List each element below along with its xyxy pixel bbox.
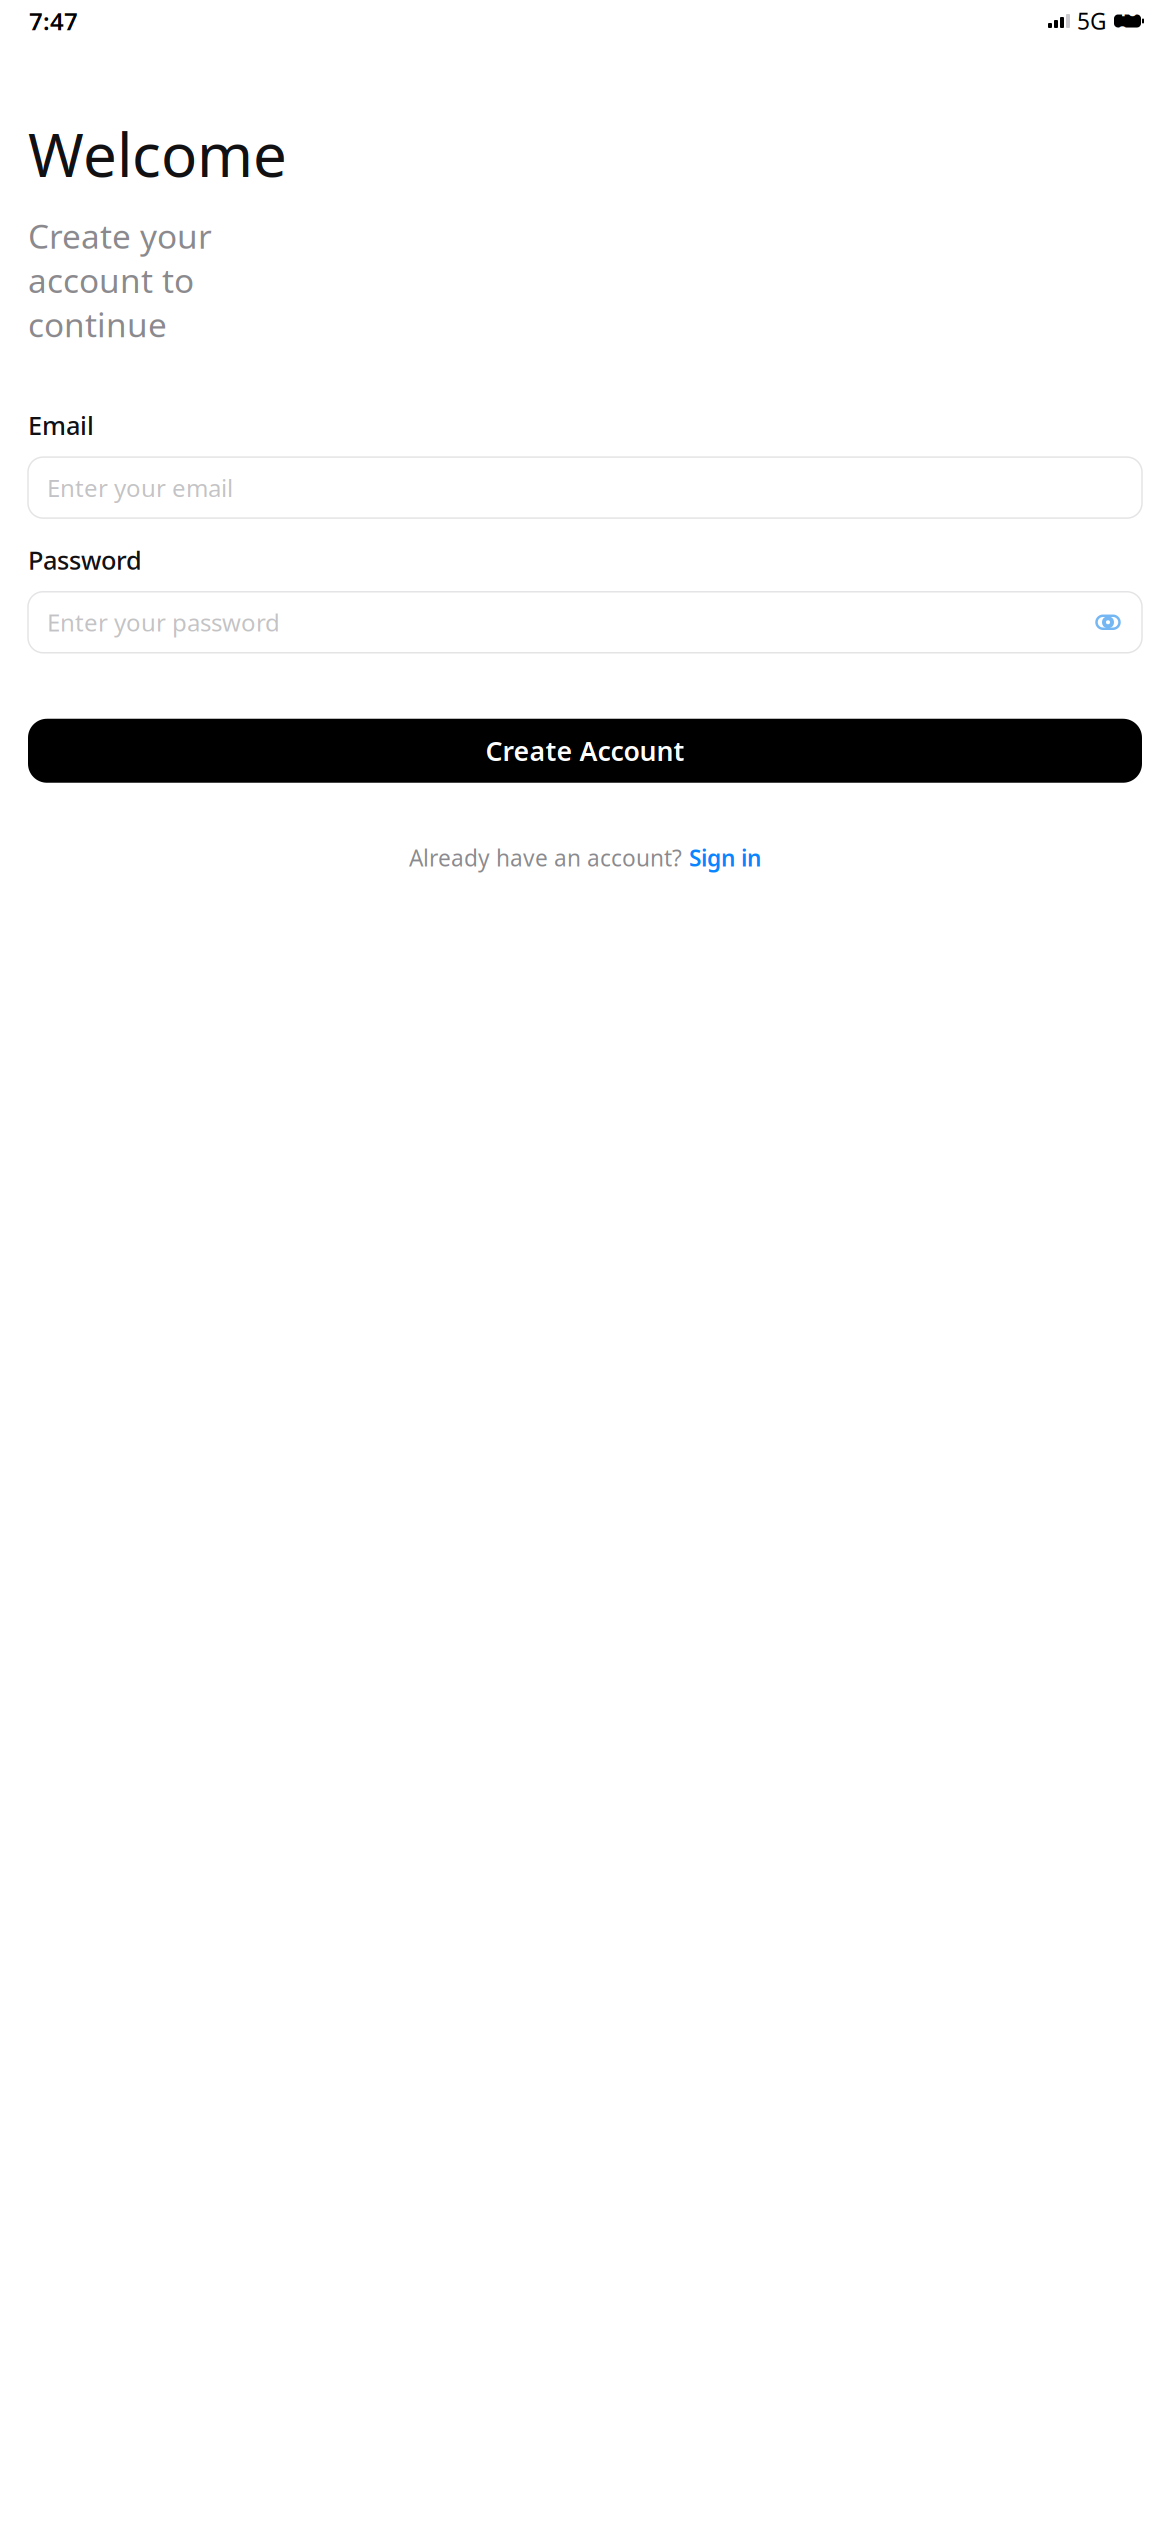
button[interactable]: Create Account xyxy=(28,719,1142,783)
staticText: Create Account xyxy=(485,733,684,768)
staticText: 5G xyxy=(1077,6,1107,36)
staticText: Enter your password xyxy=(47,606,280,638)
staticText: 100 xyxy=(1117,0,1137,44)
staticText: 7:47 xyxy=(29,5,78,37)
staticText: Enter your email xyxy=(47,472,233,504)
staticText: Already have an account? xyxy=(409,843,682,873)
staticText: Password xyxy=(28,543,142,577)
button[interactable]: Show password xyxy=(1088,602,1128,642)
button[interactable]: Sign in xyxy=(689,843,761,873)
staticText: Email xyxy=(28,408,94,442)
staticText: Create your account to continue xyxy=(28,214,212,346)
staticText: Welcome xyxy=(28,114,287,194)
staticText: Sign in xyxy=(689,843,761,873)
